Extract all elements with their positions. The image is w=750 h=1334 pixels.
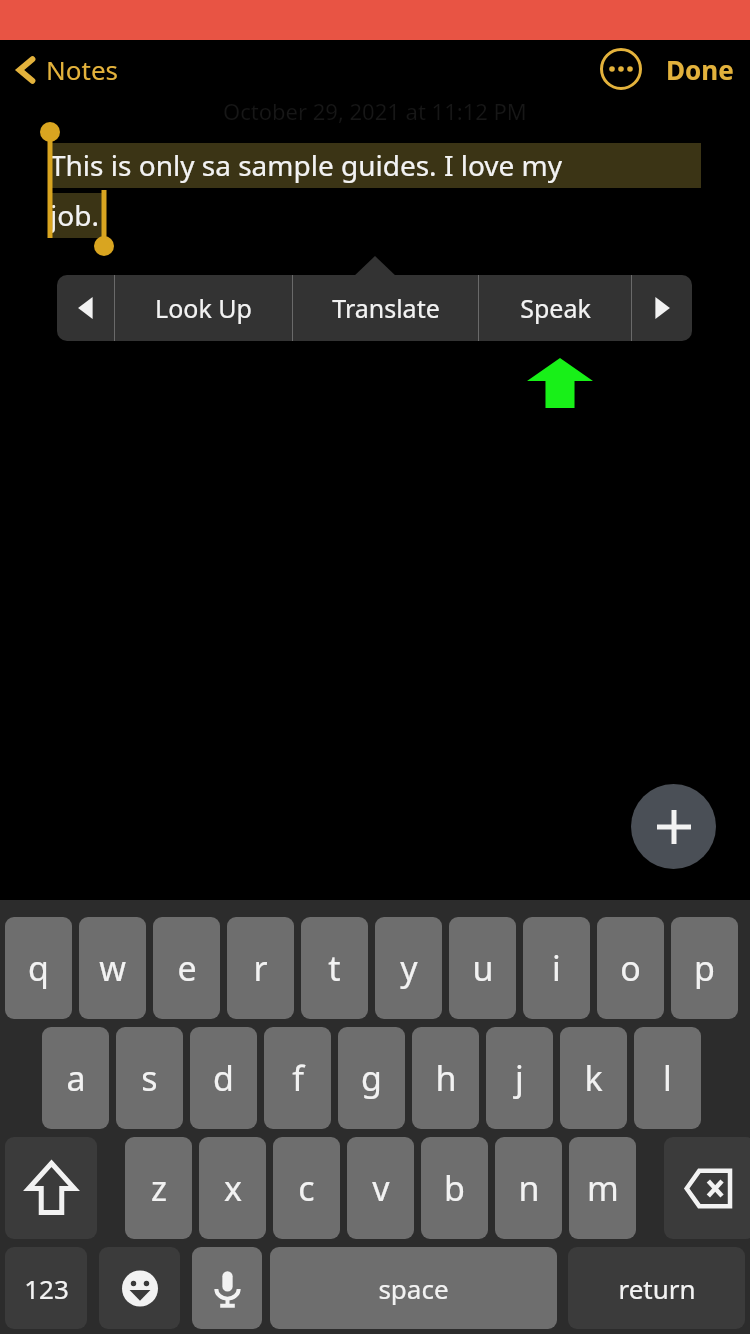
staticText: Speak (520, 291, 591, 325)
staticText: Done (666, 52, 734, 87)
button[interactable]: c (273, 1137, 340, 1239)
staticText: d (213, 1055, 234, 1101)
staticText: October 29, 2021 at 11:12 PM (223, 96, 527, 126)
staticText: g (361, 1055, 382, 1101)
staticText: i (552, 945, 561, 991)
button[interactable]: x (199, 1137, 266, 1239)
button[interactable]: g (338, 1027, 405, 1129)
button[interactable]: u (449, 917, 516, 1019)
staticText: return (618, 1271, 696, 1306)
staticText: h (435, 1055, 457, 1101)
staticText: q (28, 945, 49, 991)
staticText: Translate (332, 291, 440, 325)
staticText: p (694, 945, 715, 991)
staticText: space (378, 1271, 449, 1306)
staticText: v (372, 1165, 390, 1211)
button[interactable]: s (116, 1027, 183, 1129)
button[interactable]: return (568, 1247, 745, 1329)
button[interactable]: More options (592, 40, 650, 98)
staticText: j (515, 1055, 524, 1101)
button[interactable]: j (486, 1027, 553, 1129)
button[interactable]: e (153, 917, 220, 1019)
button[interactable]: v (347, 1137, 414, 1239)
button[interactable]: Done (650, 44, 750, 95)
staticText: f (292, 1055, 304, 1101)
button[interactable]: d (190, 1027, 257, 1129)
staticText: a (66, 1055, 86, 1101)
staticText: l (663, 1055, 672, 1101)
button[interactable]: a (42, 1027, 109, 1129)
button[interactable]: t (301, 917, 368, 1019)
staticText: w (99, 945, 126, 991)
button[interactable]: Speak (479, 275, 631, 341)
button[interactable]: o (597, 917, 664, 1019)
button[interactable]: q (5, 917, 72, 1019)
button[interactable]: Notes (0, 46, 130, 93)
staticText: This is only sa sample guides. I love my (50, 146, 563, 184)
button[interactable]: y (375, 917, 442, 1019)
staticText: job. (50, 196, 99, 234)
button[interactable]: Previous (57, 275, 114, 341)
button[interactable]: r (227, 917, 294, 1019)
button[interactable]: Look Up (115, 275, 292, 341)
staticText: s (141, 1055, 158, 1101)
button[interactable]: z (125, 1137, 192, 1239)
button[interactable]: f (264, 1027, 331, 1129)
button[interactable]: h (412, 1027, 479, 1129)
button[interactable]: Dictation (192, 1247, 262, 1329)
button[interactable]: Next (632, 275, 692, 341)
staticText: k (584, 1055, 603, 1101)
staticText: 123 (24, 1271, 69, 1306)
staticText: m (587, 1165, 619, 1211)
staticText: o (620, 945, 641, 991)
button[interactable]: b (421, 1137, 488, 1239)
button[interactable]: l (634, 1027, 701, 1129)
button[interactable]: Add (631, 784, 716, 869)
button[interactable]: Translate (293, 275, 478, 341)
button[interactable]: p (671, 917, 738, 1019)
button[interactable]: Backspace (664, 1137, 750, 1239)
button[interactable]: space (270, 1247, 557, 1329)
staticText: u (472, 945, 494, 991)
staticText: r (253, 945, 268, 991)
staticText: b (444, 1165, 465, 1211)
staticText: n (518, 1165, 540, 1211)
staticText: y (400, 945, 418, 991)
button[interactable]: i (523, 917, 590, 1019)
staticText: Notes (46, 52, 118, 87)
staticText: z (151, 1165, 167, 1211)
staticText: t (328, 945, 341, 991)
button[interactable]: w (79, 917, 146, 1019)
button[interactable]: n (495, 1137, 562, 1239)
button[interactable]: 123 (5, 1247, 87, 1329)
staticText: e (177, 945, 197, 991)
button[interactable]: k (560, 1027, 627, 1129)
button[interactable]: m (569, 1137, 636, 1239)
button[interactable]: Emoji (99, 1247, 180, 1329)
button[interactable]: Shift (5, 1137, 97, 1239)
staticText: Look Up (155, 291, 252, 325)
staticText: c (298, 1165, 315, 1211)
staticText: x (224, 1165, 242, 1211)
